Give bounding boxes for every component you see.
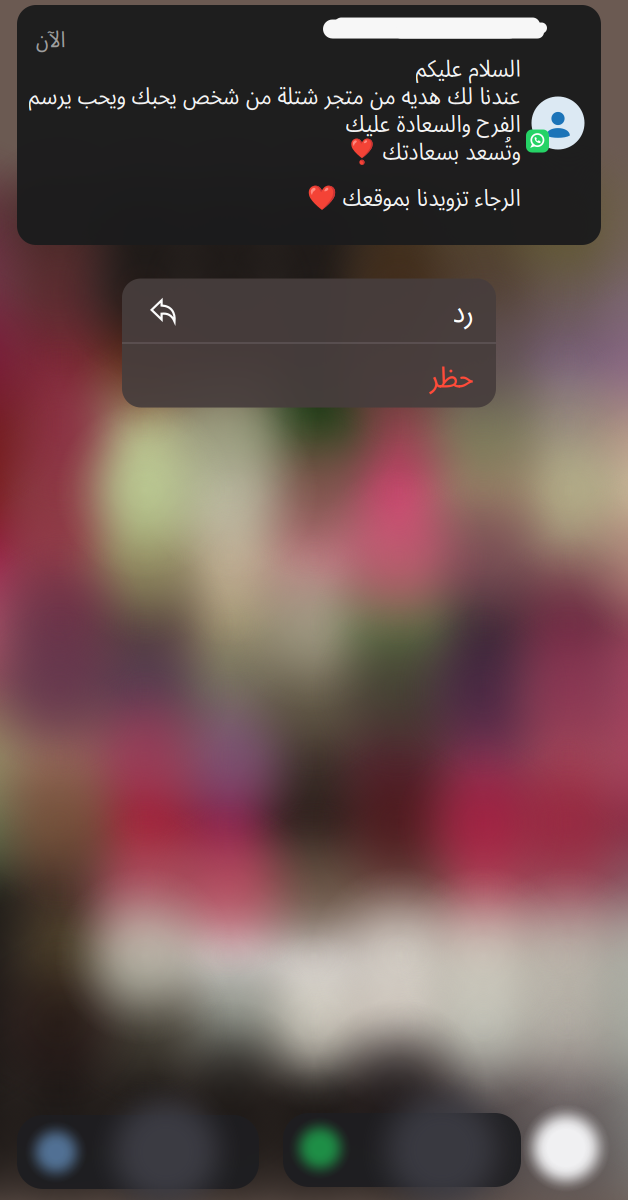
button[interactable]: حظر (122, 343, 496, 407)
staticText (515, 162, 520, 185)
staticText: حظر (429, 355, 473, 396)
staticText: وتُسعد بسعادتك ❣️ (346, 134, 520, 167)
staticText: الآن (35, 23, 65, 54)
staticText: الرجاء تزويدنا بموقعك ❤️ (306, 180, 520, 213)
staticText: الفرح والسعادة عليك (345, 106, 520, 139)
button[interactable]: رد (122, 278, 496, 342)
staticText: عندنا لك هديه من متجر شتلة من شخص يحبك و… (28, 79, 520, 111)
staticText: السلام عليكم (415, 51, 520, 84)
staticText: رد (452, 290, 473, 331)
